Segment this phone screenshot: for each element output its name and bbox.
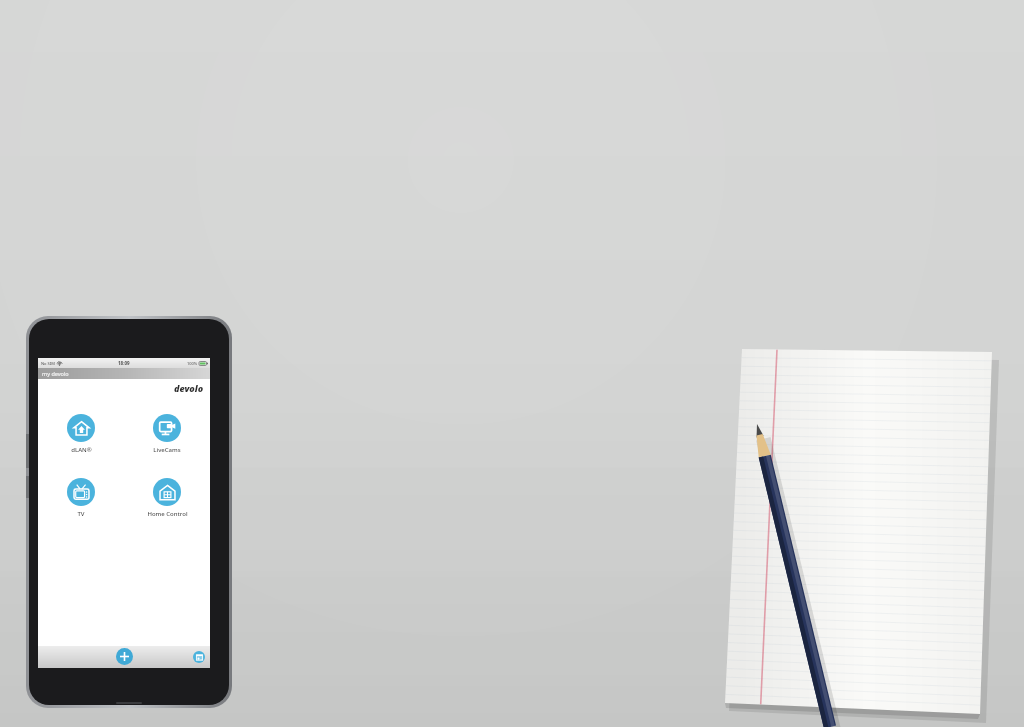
staticText: my devolo (42, 370, 69, 377)
staticText: TV (77, 510, 85, 518)
staticText: Home Control (147, 510, 188, 518)
staticText: LiveCams (153, 446, 181, 454)
staticText: devolo (174, 382, 204, 394)
button[interactable]: LiveCams (124, 414, 210, 454)
button[interactable]: dLAN® (38, 414, 124, 454)
staticText: 18:09 (118, 360, 130, 366)
staticText: dLAN® (71, 446, 92, 454)
button[interactable]: TV (38, 478, 124, 518)
button[interactable]: Overview (193, 651, 205, 663)
staticText: No SIM (41, 361, 55, 366)
staticText: 100% (187, 361, 198, 366)
button[interactable]: Home Control (124, 478, 210, 518)
button[interactable]: Add (116, 648, 133, 665)
